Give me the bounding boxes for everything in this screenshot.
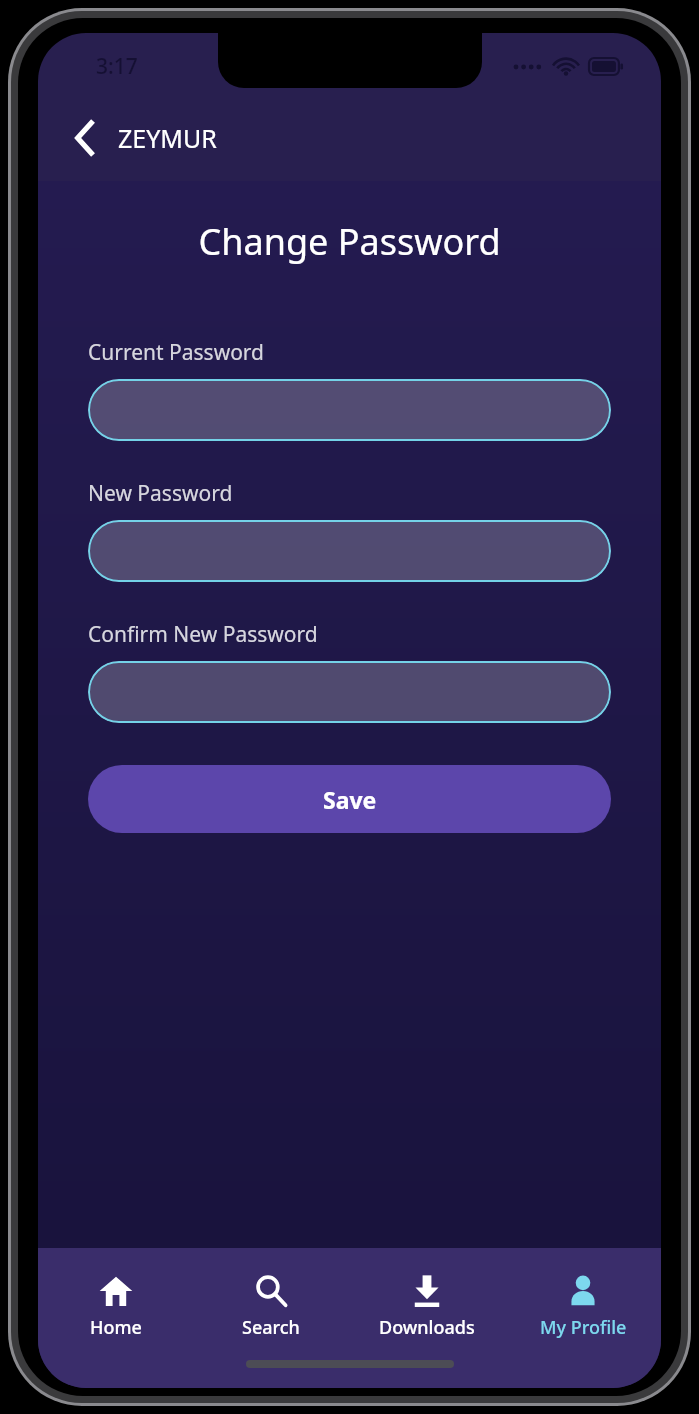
button[interactable]	[88, 520, 611, 582]
button[interactable]: Downloads	[349, 1260, 505, 1340]
button[interactable]: Home	[38, 1260, 193, 1340]
button[interactable]: Search	[193, 1260, 349, 1340]
button[interactable]: My Profile	[505, 1260, 661, 1340]
staticText: Home	[90, 1315, 142, 1340]
button[interactable]: Save	[88, 765, 611, 833]
staticText: ZEYMUR	[118, 121, 217, 155]
staticText: Current Password	[88, 338, 265, 367]
staticText: 3:17	[96, 52, 138, 81]
button[interactable]	[88, 379, 611, 441]
staticText: Confirm New Password	[88, 620, 318, 649]
staticText: My Profile	[540, 1315, 627, 1340]
staticText: Change Password	[38, 217, 661, 266]
staticText: Save	[323, 784, 377, 815]
button[interactable]: Back	[58, 110, 114, 166]
button[interactable]	[88, 661, 611, 723]
staticText: Downloads	[379, 1315, 475, 1340]
staticText: Search	[242, 1315, 300, 1340]
staticText: New Password	[88, 479, 233, 508]
